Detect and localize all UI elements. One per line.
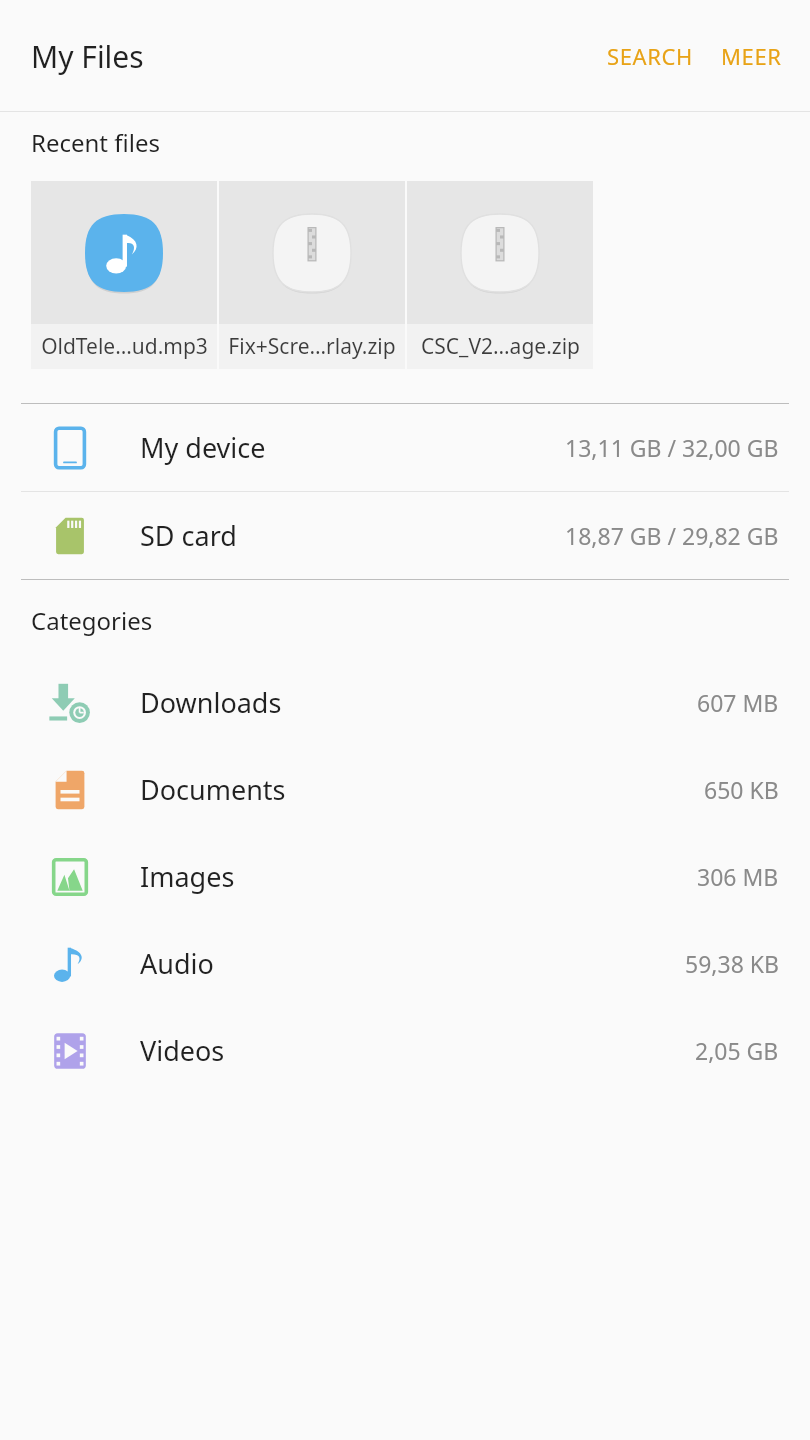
button[interactable]: Documents (0, 746, 810, 833)
staticText: MEER (721, 41, 782, 71)
staticText: Videos (140, 1032, 225, 1069)
button[interactable]: My device (0, 404, 810, 491)
staticText: 607 MB (697, 687, 779, 718)
staticText: Audio (140, 945, 214, 982)
staticText: 13,11 GB / 32,00 GB (565, 432, 779, 463)
staticText: SEARCH (607, 41, 693, 71)
staticText: 2,05 GB (695, 1035, 779, 1066)
staticText: My device (140, 429, 266, 466)
staticText: SD card (140, 517, 237, 554)
staticText: CSC_V2…age.zip (421, 332, 580, 361)
button[interactable]: CSC_V2…age.zip (407, 181, 593, 369)
button[interactable]: OldTele…ud.mp3 (31, 181, 217, 369)
button[interactable]: SD card (0, 492, 810, 579)
button[interactable]: Downloads (0, 659, 810, 746)
staticText: Categories (31, 604, 153, 637)
staticText: Fix+Scre…rlay.zip (228, 332, 396, 361)
button[interactable]: Audio (0, 920, 810, 1007)
button[interactable]: Images (0, 833, 810, 920)
staticText: Downloads (140, 684, 282, 721)
staticText: Recent files (31, 126, 160, 159)
button[interactable]: Fix+Scre…rlay.zip (219, 181, 405, 369)
button[interactable]: SEARCH (593, 29, 707, 83)
staticText: My Files (31, 36, 144, 77)
button[interactable]: Videos (0, 1007, 810, 1094)
staticText: Images (140, 858, 235, 895)
staticText: OldTele…ud.mp3 (41, 332, 208, 361)
staticText: 650 KB (704, 774, 779, 805)
staticText: 59,38 KB (685, 948, 779, 979)
staticText: 18,87 GB / 29,82 GB (565, 520, 779, 551)
staticText: Documents (140, 771, 286, 808)
staticText: 306 MB (697, 861, 779, 892)
button[interactable]: MEER (707, 29, 796, 83)
